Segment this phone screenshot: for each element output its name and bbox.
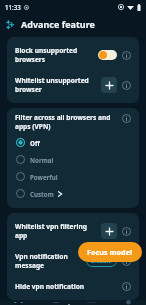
button[interactable]: Hide vpn notification [7,276,139,297]
staticText: Advance feature [21,18,95,30]
button[interactable]: Focus mode! [78,242,142,262]
button[interactable]: Whitelist vpn filtering app [7,216,139,246]
staticText: Hide vpn notification [15,282,97,291]
staticText: Block unsupported browsers [15,46,94,64]
button[interactable]: Profile [110,300,146,305]
button[interactable]: Toggle [98,50,117,60]
staticText: Whitelist vpn filtering app [15,222,97,240]
staticText: Normal [30,156,54,164]
staticText: Filter across all browsers and apps (VPN… [15,113,118,131]
staticText: Off [30,139,40,147]
button[interactable]: Whitelist unsupported browser [7,70,139,100]
button[interactable]: Add [101,223,117,239]
button[interactable]: Disable [86,255,117,267]
button[interactable]: Streak [37,300,73,305]
staticText: Disable [91,257,112,265]
staticText: Custom [30,190,54,198]
button[interactable]: Premium [73,300,109,305]
staticText: 11:33 [5,3,21,11]
button[interactable]: Add [101,77,117,93]
button[interactable]: Off [7,134,139,151]
button[interactable]: Powerful [7,168,139,185]
button[interactable]: Custom [7,185,139,202]
button[interactable]: Normal [7,151,139,168]
button[interactable]: Nopost [0,300,36,305]
staticText: Vpn notification message [15,252,82,270]
staticText: Focus mode! [87,247,133,257]
button[interactable]: Block unsupported browsers [7,40,139,70]
staticText: Whitelist unsupported browser [15,76,97,94]
button[interactable]: Vpn notification message [7,246,139,276]
staticText: Powerful [30,173,58,181]
